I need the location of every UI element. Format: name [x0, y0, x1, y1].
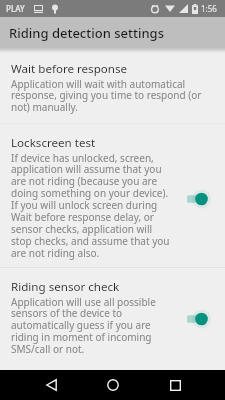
staticText: Riding detection settings	[9, 24, 164, 42]
staticText: Riding sensor check	[11, 279, 120, 295]
button[interactable]: Back	[20, 370, 82, 400]
staticText: If device has unlocked, screen, applicat…	[11, 151, 171, 260]
button[interactable]: Toggle setting	[187, 187, 219, 211]
staticText: PLAY	[6, 3, 25, 14]
button[interactable]: Riding sensor check	[0, 280, 225, 357]
staticText: Lockscreen test	[11, 135, 96, 151]
button[interactable]: Toggle setting	[187, 307, 219, 331]
button[interactable]: Wait before response	[0, 62, 225, 115]
button[interactable]: Home	[82, 370, 144, 400]
staticText: Application will wait with automatical r…	[11, 77, 207, 114]
button[interactable]: Recent apps	[144, 370, 206, 400]
staticText: Application will use all possible sensor…	[11, 295, 171, 356]
staticText: Wait before response	[11, 61, 128, 77]
staticText: 1:56	[201, 3, 217, 14]
button[interactable]: Lockscreen test	[0, 136, 225, 261]
